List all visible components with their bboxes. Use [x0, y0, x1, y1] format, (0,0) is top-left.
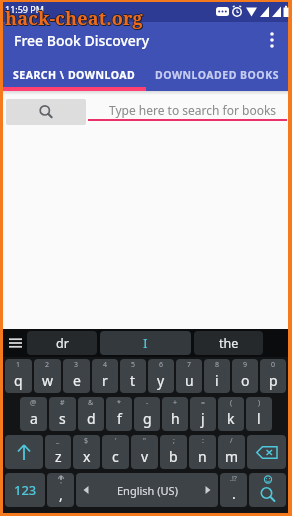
button[interactable]: 0 [260, 359, 286, 393]
staticText: w [42, 371, 54, 390]
staticText: t [130, 371, 136, 390]
staticText: d [87, 409, 96, 428]
button[interactable]: " [131, 435, 158, 469]
button[interactable] [5, 435, 43, 469]
button[interactable]: 3 [63, 359, 90, 393]
staticText: " [143, 436, 146, 446]
staticText: $ [84, 436, 89, 446]
staticText: 8 [215, 360, 220, 370]
staticText: Type here to search for books [109, 102, 277, 118]
staticText: hack-cheat.org [5, 7, 143, 32]
staticText: hack-cheat.org [6, 7, 144, 32]
staticText: 3 [74, 360, 79, 370]
staticText: .!? [230, 474, 237, 484]
staticText: j [201, 409, 205, 428]
button[interactable]: 2 [34, 359, 61, 393]
button[interactable]: $ [73, 435, 100, 469]
staticText: dr [56, 335, 69, 352]
staticText: . [232, 484, 236, 503]
staticText: h [171, 409, 180, 428]
staticText: q [14, 371, 23, 390]
button[interactable]: ( [218, 397, 244, 431]
button[interactable]: 123 [5, 473, 45, 507]
button[interactable]: : [189, 435, 216, 469]
button[interactable]: - [134, 397, 160, 431]
button[interactable]: the [194, 331, 263, 355]
staticText: # [60, 398, 65, 408]
staticText: b [169, 447, 178, 466]
staticText: ( [230, 398, 233, 408]
button[interactable] [256, 24, 288, 56]
staticText: n [198, 447, 207, 466]
button[interactable]: DOWNLOADED BOOKS [145, 58, 288, 91]
button[interactable] [6, 99, 86, 125]
staticText: : [202, 436, 204, 446]
button[interactable]: 8 [204, 359, 230, 393]
button[interactable]: English (US) [76, 473, 218, 507]
staticText: 6 [159, 360, 164, 370]
button[interactable]: 1 [5, 359, 32, 393]
staticText: hack-cheat.org [4, 6, 142, 31]
staticText: x [83, 447, 91, 466]
button[interactable]: 9 [232, 359, 258, 393]
staticText: = [201, 398, 206, 408]
staticText: 4 [103, 360, 108, 370]
button[interactable]: .!? [220, 473, 247, 507]
staticText: * [117, 398, 121, 408]
staticText: 123 [14, 481, 37, 499]
button[interactable]: 4 [92, 359, 118, 393]
button[interactable]: * [106, 397, 132, 431]
staticText: + [173, 398, 178, 408]
button[interactable]: & [78, 397, 104, 431]
button[interactable] [249, 473, 286, 507]
button[interactable] [247, 435, 286, 469]
staticText: & [88, 398, 94, 408]
button[interactable]: ) [246, 397, 272, 431]
staticText: 9 [243, 360, 248, 370]
button[interactable]: + [162, 397, 188, 431]
staticText: v [141, 447, 149, 466]
staticText: ' [115, 436, 117, 446]
button[interactable]: ' [102, 435, 129, 469]
staticText: y [157, 371, 165, 390]
button[interactable]: # [49, 397, 76, 431]
staticText: the [219, 335, 239, 352]
button[interactable]: dr [27, 331, 97, 355]
staticText: hack-cheat.org [5, 5, 143, 30]
staticText: ) [258, 398, 261, 408]
staticText: ; [173, 436, 175, 446]
staticText: English (US) [117, 483, 178, 498]
staticText: a [30, 409, 38, 428]
button[interactable]: 7 [176, 359, 202, 393]
button[interactable]: ; [160, 435, 187, 469]
staticText: r [102, 371, 108, 390]
staticText: 1 [16, 360, 21, 370]
button[interactable]: @ [20, 397, 47, 431]
staticText: hack-cheat.org [5, 6, 143, 31]
staticText: / [230, 436, 233, 446]
staticText: 0 [271, 360, 276, 370]
button[interactable]: = [190, 397, 216, 431]
staticText: 11:59 PM [5, 3, 44, 15]
button[interactable]: 5 [120, 359, 146, 393]
button[interactable]: , [47, 473, 74, 507]
button[interactable]: _ [45, 435, 71, 469]
staticText: _ [56, 436, 60, 446]
button[interactable]: I [100, 331, 191, 355]
staticText: f [117, 409, 122, 428]
staticText: l [257, 409, 261, 428]
staticText: k [227, 409, 235, 428]
staticText: 5 [131, 360, 136, 370]
button[interactable]: 6 [148, 359, 174, 393]
button[interactable]: Type here to search for books [88, 99, 287, 121]
button[interactable]: SEARCH \ DOWNLOAD [3, 58, 145, 91]
staticText: e [73, 371, 81, 390]
staticText: o [241, 371, 250, 390]
staticText: DOWNLOADED BOOKS [155, 68, 279, 82]
staticText: , [59, 485, 63, 504]
button[interactable]: / [218, 435, 245, 469]
staticText: 7 [187, 360, 192, 370]
staticText: z [55, 447, 62, 466]
button[interactable] [3, 329, 27, 357]
staticText: s [59, 409, 66, 428]
